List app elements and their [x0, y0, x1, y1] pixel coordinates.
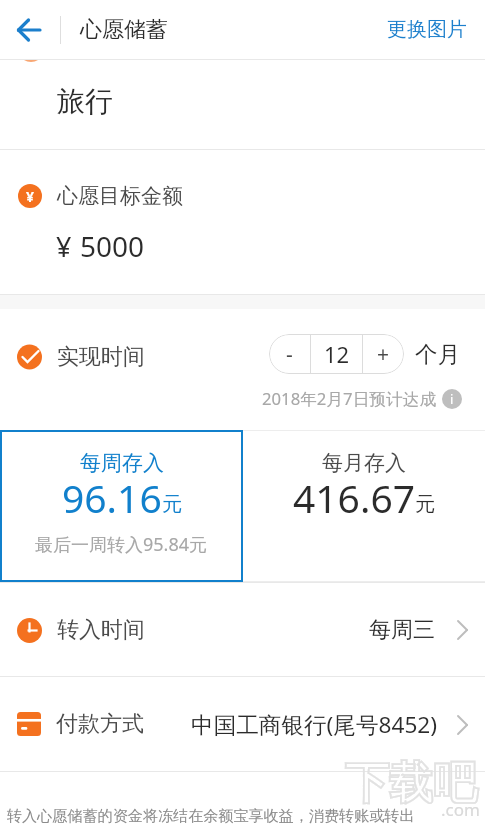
staticText: + — [377, 340, 390, 369]
staticText: 更换图片 — [387, 17, 467, 42]
staticText: 个月 — [415, 340, 460, 368]
staticText: 每月存入 — [322, 450, 406, 476]
staticText: 每周存入 — [80, 450, 164, 476]
other: Open — [453, 715, 473, 735]
staticText: 心愿目标金额 — [57, 183, 183, 209]
button[interactable]: 每周存入 — [0, 430, 243, 582]
button[interactable]: 转入时间 — [0, 583, 485, 676]
other: Open — [453, 620, 473, 640]
staticText: 付款方式 — [56, 710, 144, 738]
staticText: ¥ — [56, 228, 72, 265]
button[interactable]: 每月存入 — [242, 430, 485, 582]
staticText: 2018年2月7日预计达成 — [262, 387, 437, 410]
staticText: i — [450, 390, 454, 408]
staticText: 旅行 — [57, 84, 113, 119]
button[interactable]: Decrease — [269, 334, 310, 374]
staticText: 416.67 — [293, 471, 415, 524]
staticText: 实现时间 — [57, 343, 145, 371]
button[interactable]: 付款方式 — [0, 677, 485, 771]
staticText: 下载吧 — [345, 756, 477, 811]
staticText: .com — [441, 798, 480, 821]
staticText: 转入时间 — [57, 616, 145, 644]
staticText: 心愿储蓄 — [80, 16, 168, 44]
staticText: 中国工商银行(尾号8452) — [191, 709, 438, 740]
staticText: 最后一周转入95.84元 — [35, 532, 208, 557]
staticText: ¥ — [26, 187, 35, 206]
button[interactable]: 更换图片 — [369, 8, 485, 51]
staticText: 12 — [324, 339, 350, 369]
button[interactable]: Back — [0, 1, 58, 59]
staticText: 5000 — [80, 227, 145, 265]
staticText: 转入心愿储蓄的资金将冻结在余额宝享收益，消费转账或转出 — [7, 806, 415, 825]
staticText: 96.16 — [62, 471, 162, 524]
button[interactable]: Info — [442, 389, 462, 409]
staticText: - — [286, 340, 293, 369]
button[interactable]: Increase — [363, 334, 404, 374]
staticText: 每周三 — [369, 616, 435, 644]
staticText: 元 — [162, 492, 182, 517]
staticText: 元 — [415, 492, 435, 517]
